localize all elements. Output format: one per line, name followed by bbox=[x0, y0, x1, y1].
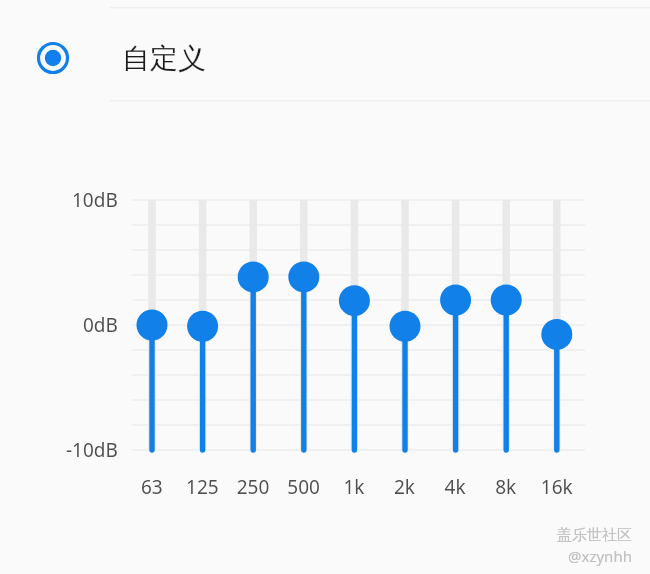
button[interactable]: Band 250 level slider bbox=[231, 192, 275, 492]
button[interactable]: Band 125 level slider bbox=[181, 192, 225, 492]
button[interactable]: Band 500 level slider bbox=[282, 192, 326, 492]
button[interactable]: Band 1k level slider bbox=[332, 192, 376, 492]
button[interactable]: Band 2k level slider bbox=[383, 192, 427, 492]
button[interactable]: Band 4k level slider bbox=[434, 192, 478, 492]
button[interactable]: 自定义 preset, selected bbox=[31, 36, 75, 80]
button[interactable]: Band 63 level slider bbox=[130, 192, 174, 492]
button[interactable] bbox=[0, 10, 650, 98]
button[interactable]: Band 8k level slider bbox=[484, 192, 528, 492]
button[interactable]: Band 16k level slider bbox=[535, 192, 579, 492]
